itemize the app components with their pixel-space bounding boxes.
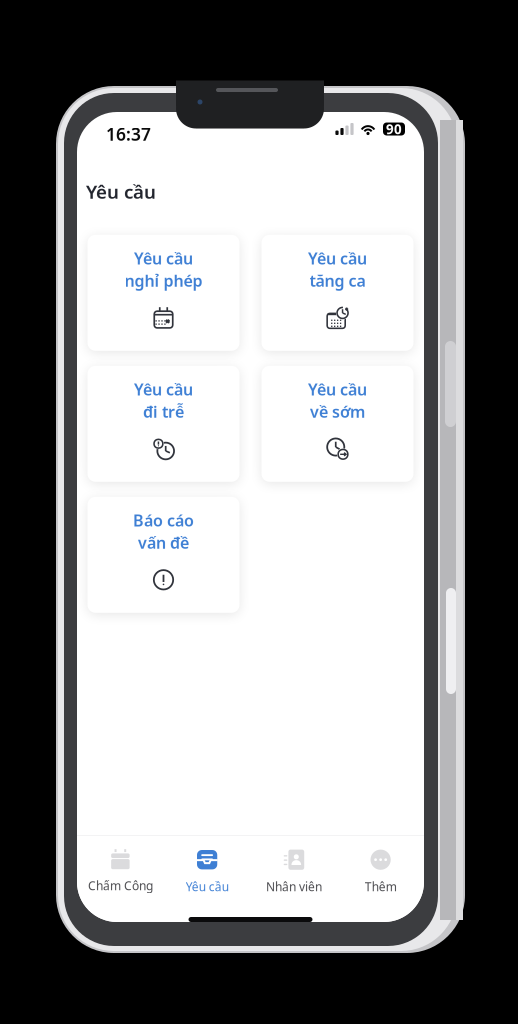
button[interactable]: Thêm	[337, 836, 424, 898]
staticText: Thêm	[365, 879, 397, 895]
staticText: vấn đề	[138, 532, 189, 553]
staticText: Nhân viên	[266, 879, 322, 895]
staticText: về sớm	[310, 401, 365, 422]
staticText: đi trễ	[143, 401, 184, 422]
button[interactable]: Yêu cầu	[164, 836, 251, 898]
staticText: Yêu cầu	[186, 879, 229, 895]
button[interactable]: Yêu cầu	[261, 366, 413, 482]
button[interactable]: Chấm Công	[77, 836, 164, 898]
button[interactable]: Báo cáo	[87, 497, 239, 613]
staticText: nghỉ phép	[124, 270, 202, 291]
staticText: 16:37	[106, 122, 151, 145]
staticText: Yêu cầu	[308, 248, 367, 269]
button[interactable]: Yêu cầu	[87, 235, 239, 351]
staticText: Chấm Công	[88, 878, 153, 894]
staticText: Yêu cầu	[308, 379, 367, 400]
staticText: Yêu cầu	[134, 248, 193, 269]
staticText: Báo cáo	[133, 510, 194, 531]
staticText: Yêu cầu	[134, 379, 193, 400]
button[interactable]: Yêu cầu	[87, 366, 239, 482]
button[interactable]: Nhân viên	[250, 836, 337, 898]
button[interactable]: Yêu cầu	[261, 235, 413, 351]
staticText: tăng ca	[309, 270, 365, 291]
staticText: Yêu cầu	[86, 179, 156, 204]
staticText: 90	[386, 120, 402, 138]
